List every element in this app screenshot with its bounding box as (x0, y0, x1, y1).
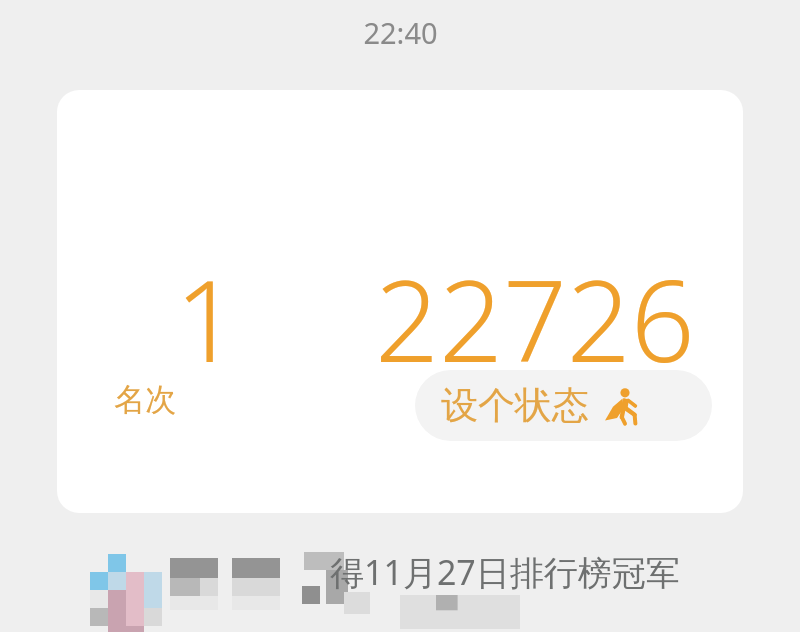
staticText: 名次 (114, 380, 176, 419)
staticText: 得11月27日排行榜冠军 (330, 549, 680, 595)
staticText: 22726 (375, 242, 695, 395)
staticText: 步数 (629, 380, 691, 419)
button[interactable]: 1 (57, 90, 743, 513)
button[interactable]: 设个状态 (415, 370, 712, 441)
other: Walking (601, 386, 641, 426)
staticText: 22:40 (363, 13, 438, 52)
staticText: 设个状态 (441, 382, 589, 429)
staticText: 1 (175, 242, 239, 395)
